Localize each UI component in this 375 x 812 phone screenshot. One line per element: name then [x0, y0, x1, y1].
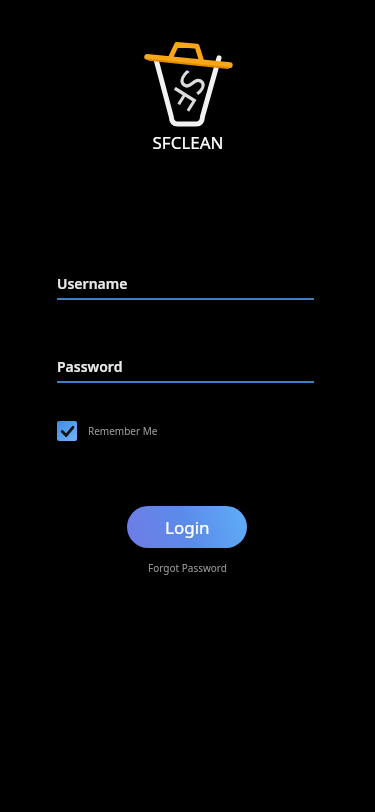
staticText: Login	[165, 516, 210, 539]
button[interactable]: Username	[57, 274, 314, 300]
staticText: SFCLEAN	[152, 131, 224, 154]
button[interactable]: Password	[57, 357, 314, 383]
button[interactable]: Login	[127, 506, 247, 548]
staticText: SF	[159, 63, 218, 119]
staticText: Remember Me	[88, 424, 158, 438]
button[interactable]: Forgot Password	[140, 559, 235, 577]
staticText: Password	[57, 357, 123, 376]
button[interactable]: Remember Me	[57, 421, 158, 441]
staticText: Forgot Password	[148, 561, 227, 575]
staticText: Username	[57, 274, 128, 293]
